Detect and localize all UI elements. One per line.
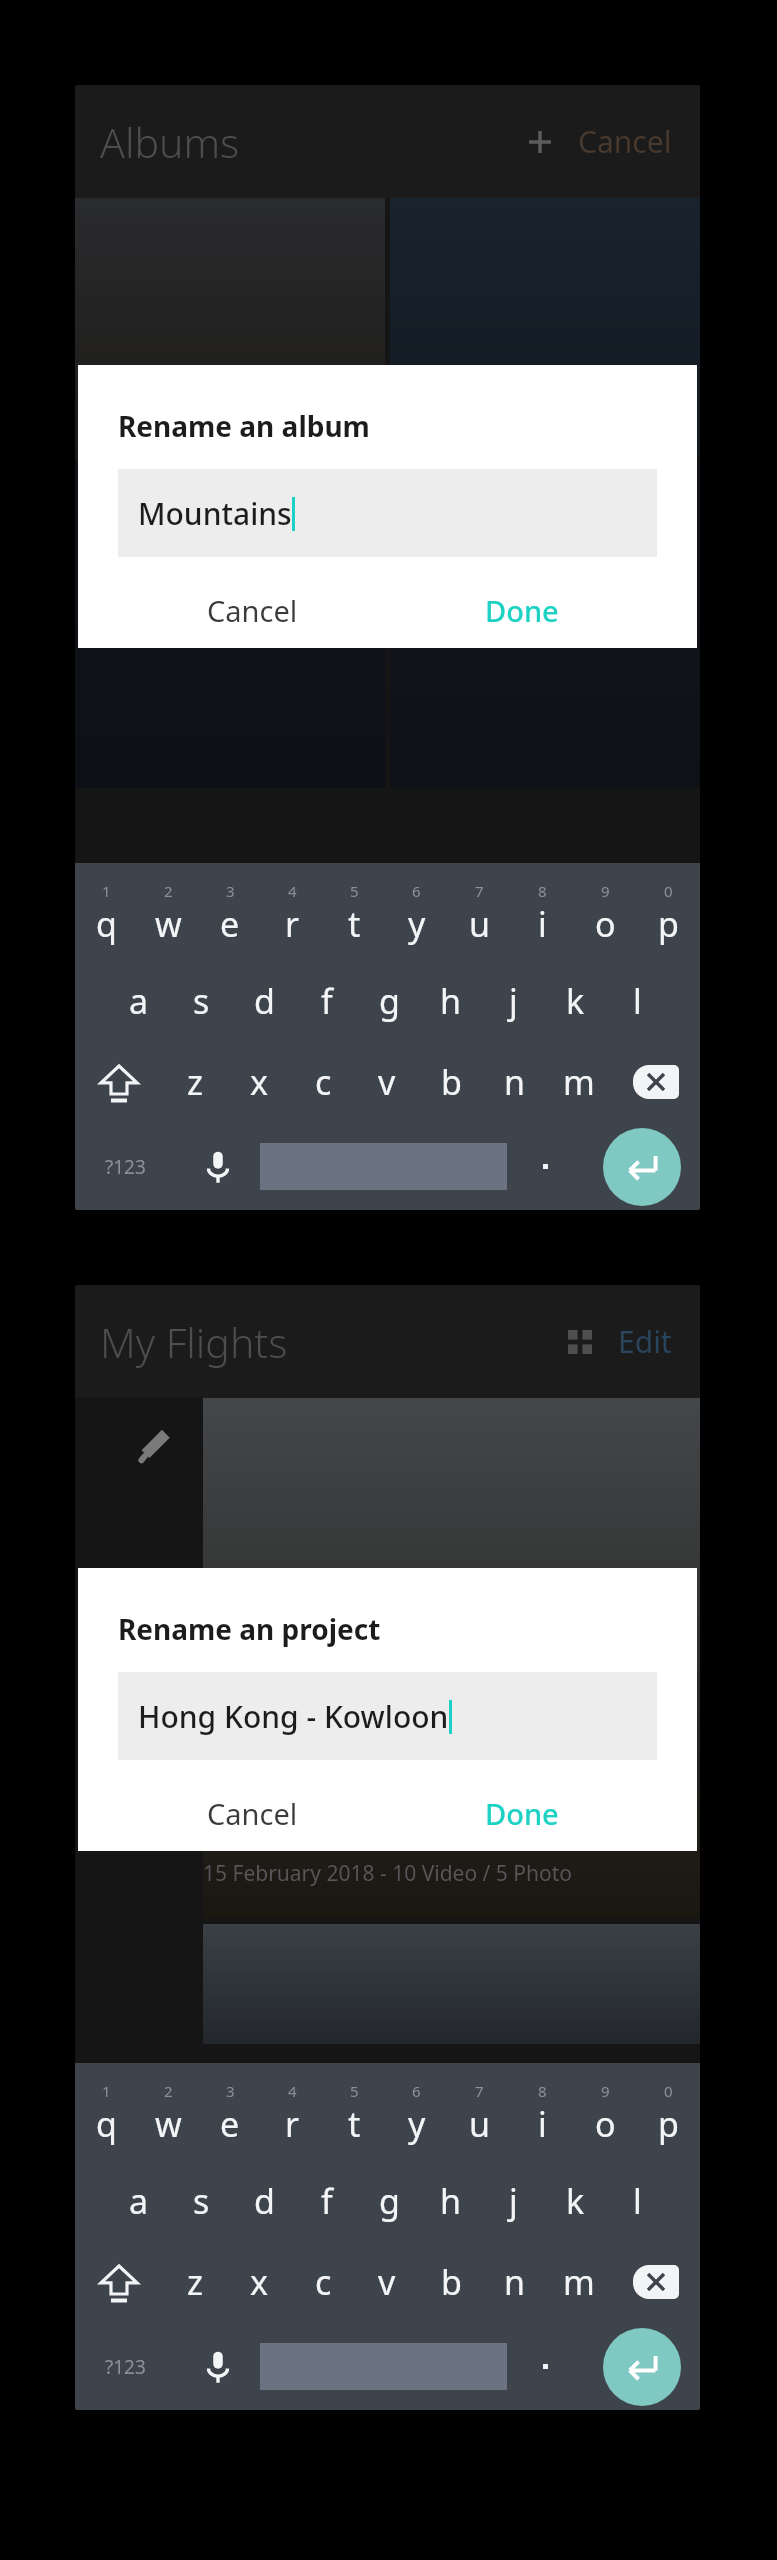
button[interactable]: x bbox=[227, 1041, 291, 1123]
button[interactable]: 8 bbox=[511, 877, 574, 961]
button[interactable]: 5 bbox=[323, 877, 385, 961]
button[interactable]: f bbox=[296, 2161, 358, 2241]
staticText: 0 bbox=[664, 2081, 673, 2101]
button[interactable]: Voice input bbox=[175, 1123, 260, 1210]
button[interactable]: Enter bbox=[603, 1128, 681, 1206]
button[interactable]: 9 bbox=[574, 2077, 637, 2161]
button[interactable]: d bbox=[233, 2161, 296, 2241]
button[interactable]: Add album bbox=[518, 120, 562, 164]
button[interactable]: a bbox=[107, 2161, 170, 2241]
button[interactable]: Backspace bbox=[611, 1041, 700, 1123]
button[interactable]: Shift bbox=[75, 2241, 163, 2323]
button[interactable]: 6 bbox=[385, 877, 448, 961]
button[interactable]: All Media bbox=[75, 198, 385, 458]
button[interactable]: 5 bbox=[323, 2077, 385, 2161]
button[interactable]: n bbox=[483, 2241, 547, 2323]
button[interactable]: s bbox=[170, 961, 233, 1041]
button[interactable]: 6 bbox=[385, 2077, 448, 2161]
button[interactable]: a bbox=[107, 961, 170, 1041]
staticText: 7 bbox=[475, 881, 484, 901]
button[interactable]: Cancel bbox=[118, 1794, 387, 1833]
button[interactable]: 9 bbox=[574, 877, 637, 961]
button[interactable]: g bbox=[358, 2161, 420, 2241]
button[interactable]: 1 bbox=[75, 2077, 137, 2161]
staticText: 4 bbox=[288, 881, 297, 901]
button[interactable]: v bbox=[355, 1041, 419, 1123]
button[interactable]: ?123 bbox=[75, 1123, 175, 1210]
staticText: ?123 bbox=[105, 1154, 146, 1180]
button[interactable]: 7 bbox=[448, 2077, 511, 2161]
button[interactable]: Done bbox=[387, 591, 657, 630]
button[interactable]: ?123 bbox=[75, 2323, 175, 2410]
button[interactable]: z bbox=[163, 2241, 227, 2323]
button[interactable]: d bbox=[233, 961, 296, 1041]
staticText: n bbox=[504, 1059, 526, 1105]
button[interactable]: Shift bbox=[75, 1041, 163, 1123]
button[interactable]: m bbox=[547, 2241, 611, 2323]
button[interactable]: n bbox=[483, 1041, 547, 1123]
button[interactable]: 3 bbox=[199, 2077, 261, 2161]
button[interactable]: 4 bbox=[261, 2077, 323, 2161]
button[interactable]: l bbox=[606, 961, 668, 1041]
staticText: o bbox=[595, 901, 616, 947]
button[interactable]: 2 bbox=[137, 2077, 199, 2161]
button[interactable]: 8 bbox=[511, 2077, 574, 2161]
button[interactable]: j bbox=[482, 2161, 544, 2241]
button[interactable]: 1 bbox=[75, 877, 137, 961]
staticText: ?123 bbox=[105, 2354, 146, 2380]
staticText: m bbox=[563, 2259, 595, 2305]
button[interactable]: Cancel bbox=[572, 113, 678, 170]
button[interactable]: f bbox=[296, 961, 358, 1041]
button[interactable]: Remove bbox=[117, 1620, 169, 1672]
button[interactable]: j bbox=[482, 961, 544, 1041]
button[interactable]: Edit bbox=[612, 1313, 678, 1370]
button[interactable] bbox=[507, 2323, 584, 2410]
button[interactable]: g bbox=[358, 961, 420, 1041]
button[interactable]: l bbox=[606, 2161, 668, 2241]
button[interactable]: x bbox=[227, 2241, 291, 2323]
staticText: j bbox=[509, 2178, 518, 2224]
button[interactable]: 0 bbox=[637, 2077, 700, 2161]
button[interactable]: 4 bbox=[261, 877, 323, 961]
button[interactable]: h bbox=[420, 2161, 482, 2241]
button[interactable]: Favorite bbox=[390, 198, 700, 458]
staticText: c bbox=[315, 1059, 332, 1105]
button[interactable]: Voice input bbox=[175, 2323, 260, 2410]
staticText: 15 February 2018 - 10 Video / 5 Photo bbox=[203, 1859, 572, 1888]
button[interactable]: z bbox=[163, 1041, 227, 1123]
button[interactable]: Backspace bbox=[611, 2241, 700, 2323]
staticText: 9 bbox=[601, 881, 610, 901]
button[interactable] bbox=[507, 1123, 584, 1210]
button[interactable]: c bbox=[291, 2241, 355, 2323]
button[interactable]: b bbox=[419, 2241, 483, 2323]
button[interactable]: Enter bbox=[603, 2328, 681, 2406]
button[interactable]: h bbox=[420, 961, 482, 1041]
button[interactable]: Cancel bbox=[118, 591, 387, 630]
button[interactable]: v bbox=[355, 2241, 419, 2323]
button[interactable]: c bbox=[291, 1041, 355, 1123]
button[interactable]: k bbox=[544, 2161, 606, 2241]
button[interactable]: s bbox=[170, 2161, 233, 2241]
button[interactable] bbox=[75, 463, 385, 788]
button[interactable] bbox=[390, 463, 700, 788]
staticText: h bbox=[440, 2178, 462, 2224]
button[interactable]: 2 bbox=[137, 877, 199, 961]
button[interactable]: b bbox=[419, 1041, 483, 1123]
button[interactable]: Grid view bbox=[558, 1320, 602, 1364]
button[interactable]: 0 bbox=[637, 877, 700, 961]
button[interactable]: 3 bbox=[199, 877, 261, 961]
button[interactable]: m bbox=[547, 1041, 611, 1123]
button[interactable]: Edit project bbox=[127, 1418, 183, 1474]
button[interactable]: 7 bbox=[448, 877, 511, 961]
staticText: y bbox=[408, 2101, 426, 2147]
staticText: 6 bbox=[412, 881, 421, 901]
staticText: v bbox=[378, 2259, 396, 2305]
button[interactable]: Mountains bbox=[118, 469, 657, 557]
staticText: Cancel bbox=[207, 591, 298, 630]
button[interactable]: Hong Kong - Kowloon bbox=[118, 1672, 657, 1760]
button[interactable]: Done bbox=[387, 1794, 657, 1833]
button[interactable]: k bbox=[544, 961, 606, 1041]
staticText: w bbox=[155, 2101, 182, 2147]
